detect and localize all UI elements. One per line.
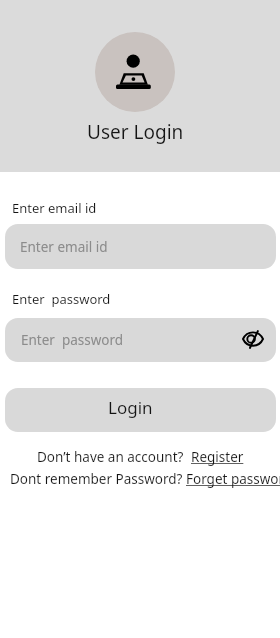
- button[interactable]: Forget password: [186, 470, 280, 488]
- button[interactable]: [240, 327, 266, 353]
- staticText: Don’t have an account?: [37, 448, 191, 466]
- staticText: User Login: [87, 119, 184, 145]
- staticText: Enter email id: [20, 238, 108, 256]
- button[interactable]: Register: [191, 448, 244, 466]
- staticText: Login: [108, 396, 153, 419]
- staticText: Enter password: [12, 290, 111, 308]
- staticText: Enter email id: [12, 199, 97, 217]
- button[interactable]: Enter password: [5, 318, 276, 362]
- button[interactable]: Enter email id: [5, 224, 276, 269]
- staticText: Dont remember Password?: [10, 470, 186, 488]
- staticText: Enter password: [21, 331, 124, 349]
- button[interactable]: Login: [5, 388, 276, 432]
